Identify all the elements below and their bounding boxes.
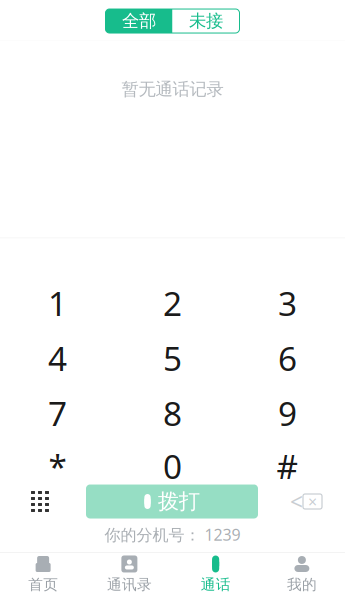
staticText: < [290,486,303,516]
button[interactable]: 通讯录 [86,553,172,595]
staticText: 你的分机号： 1239 [104,524,240,545]
staticText: 1 [48,281,67,325]
staticText: 5 [163,336,182,380]
staticText: 7 [48,391,67,435]
staticText: 首页 [28,575,58,593]
button[interactable]: 键盘 [25,484,55,518]
staticText: 拨打 [158,488,200,515]
staticText: × [308,491,317,512]
staticText: * [48,444,66,488]
button[interactable]: 未接 [172,9,239,33]
staticText: 2 [163,281,182,325]
staticText: 通讯录 [107,575,152,593]
button[interactable]: 2 [115,288,230,318]
staticText: 6 [278,336,297,380]
button[interactable]: 6 [230,343,345,373]
staticText: # [276,444,298,488]
button[interactable]: 4 [0,343,115,373]
staticText: 0 [163,444,182,488]
staticText: 8 [163,391,182,435]
button[interactable]: 拨打 [86,484,258,518]
button[interactable]: 0 [115,451,230,481]
button[interactable]: 5 [115,343,230,373]
button[interactable]: 7 [0,398,115,428]
button[interactable]: 3 [230,288,345,318]
staticText: 我的 [287,575,317,593]
staticText: 9 [278,391,297,435]
button[interactable]: 9 [230,398,345,428]
button[interactable]: 8 [115,398,230,428]
button[interactable]: 通话 [172,553,259,595]
button[interactable]: 删除 [289,484,323,518]
staticText: 通话 [201,575,231,593]
button[interactable]: * [0,451,115,481]
button[interactable]: # [230,451,345,481]
staticText: 4 [48,336,67,380]
button[interactable]: 1 [0,288,115,318]
button[interactable]: 首页 [0,553,86,595]
staticText: 暂无通话记录 [121,78,223,100]
staticText: 3 [278,281,297,325]
staticText: 未接 [189,10,223,32]
button[interactable]: 全部 [105,9,172,33]
button[interactable]: 我的 [259,553,345,595]
staticText: 全部 [122,10,156,32]
